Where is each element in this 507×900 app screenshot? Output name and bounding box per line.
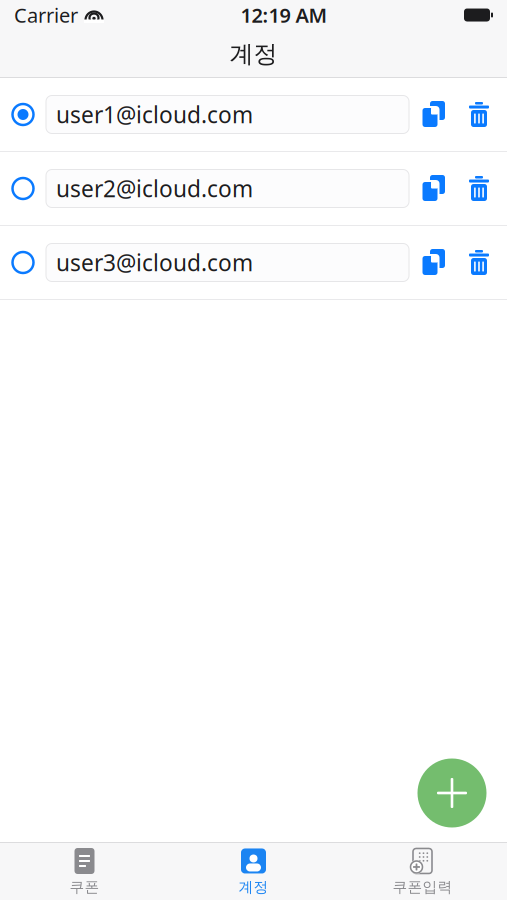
- button[interactable]: Select user1@icloud.com: [0, 88, 46, 140]
- button[interactable]: 쿠폰: [0, 843, 169, 899]
- button[interactable]: 계정: [169, 843, 338, 899]
- button[interactable]: Add account: [409, 750, 495, 836]
- staticText: user3@icloud.com: [56, 247, 253, 277]
- staticText: 쿠폰입력: [392, 878, 452, 896]
- staticText: 계정: [229, 39, 277, 69]
- button[interactable]: Select user2@icloud.com: [0, 162, 46, 214]
- button[interactable]: Select user3@icloud.com: [0, 236, 46, 288]
- staticText: user2@icloud.com: [56, 173, 253, 203]
- button[interactable]: Delete user2@icloud.com: [457, 162, 501, 214]
- staticText: 계정: [238, 878, 268, 896]
- button[interactable]: Copy user2@icloud.com: [409, 162, 457, 214]
- staticText: Carrier: [14, 2, 78, 28]
- staticText: 쿠폰: [69, 878, 99, 896]
- staticText: 12:19 AM: [240, 2, 327, 28]
- button[interactable]: Copy user3@icloud.com: [409, 236, 457, 288]
- button[interactable]: Copy user1@icloud.com: [409, 88, 457, 140]
- button[interactable]: Delete user1@icloud.com: [457, 88, 501, 140]
- staticText: user1@icloud.com: [56, 99, 253, 129]
- button[interactable]: 쿠폰입력: [338, 843, 507, 899]
- button[interactable]: Delete user3@icloud.com: [457, 236, 501, 288]
